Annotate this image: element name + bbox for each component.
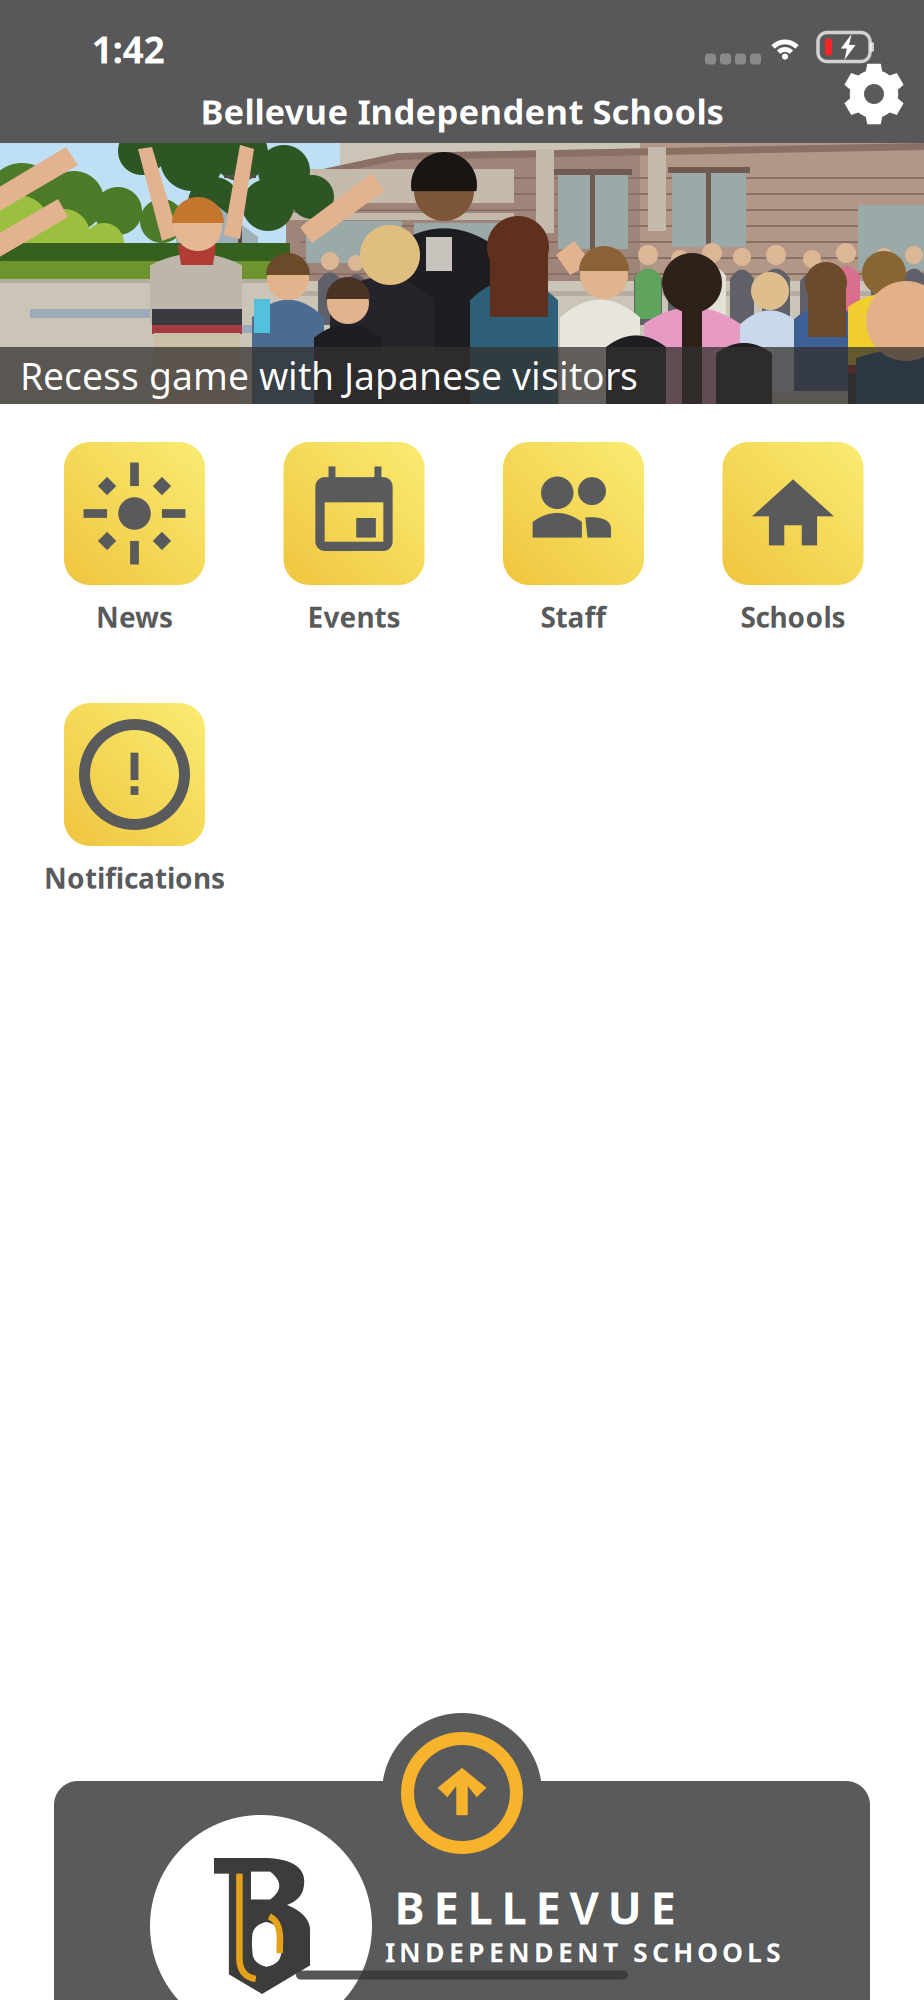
staticText: Bellevue Independent Schools — [200, 88, 723, 134]
staticText: BELLEVUE — [394, 1877, 675, 1937]
button[interactable]: Settings — [836, 56, 912, 132]
button[interactable]: News — [64, 442, 205, 637]
staticText: 1:42 — [91, 24, 164, 74]
button[interactable]: Scroll to top — [402, 1733, 522, 1853]
staticText: Recess game with Japanese visitors — [20, 351, 638, 400]
staticText: Schools — [740, 598, 845, 636]
staticText: Events — [307, 598, 400, 636]
button[interactable]: Notifications — [64, 703, 205, 898]
staticText: Notifications — [44, 859, 225, 897]
button[interactable]: Staff — [503, 442, 644, 637]
button[interactable]: Events — [283, 442, 424, 637]
button[interactable]: Schools — [722, 442, 863, 637]
staticText: News — [96, 598, 173, 636]
staticText: Staff — [540, 598, 606, 636]
staticText: INDEPENDENT SCHOOLS — [385, 1934, 781, 1970]
